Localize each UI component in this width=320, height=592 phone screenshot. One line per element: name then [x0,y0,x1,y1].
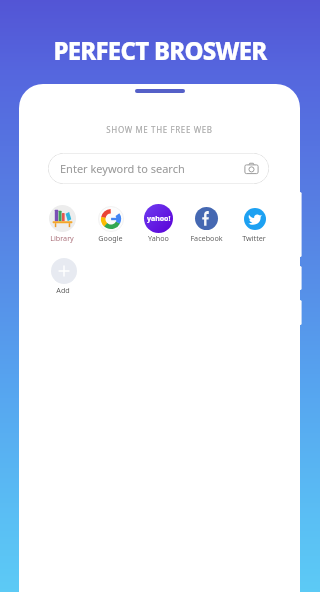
staticText: Yahoo [148,233,169,243]
button[interactable]: Facebook [187,204,225,243]
button[interactable]: Add [44,256,82,295]
button[interactable]: Library [43,204,81,243]
staticText: Library [50,233,74,243]
staticText: Google [98,233,123,243]
button[interactable]: Twitter [235,204,273,243]
staticText: SHOW ME THE FREE WEB [19,124,300,135]
button[interactable]: Enter keyword to search [48,153,269,184]
staticText: yahoo! [147,214,171,224]
staticText: Enter keyword to search [60,161,185,176]
button[interactable]: Search by camera [244,161,259,176]
staticText: Add [56,285,70,295]
staticText: Twitter [242,233,266,243]
button[interactable]: yahoo! [139,204,177,243]
staticText: Facebook [190,233,223,243]
staticText: PERFECT BROSWER [0,34,320,67]
button[interactable]: Google [91,204,129,243]
